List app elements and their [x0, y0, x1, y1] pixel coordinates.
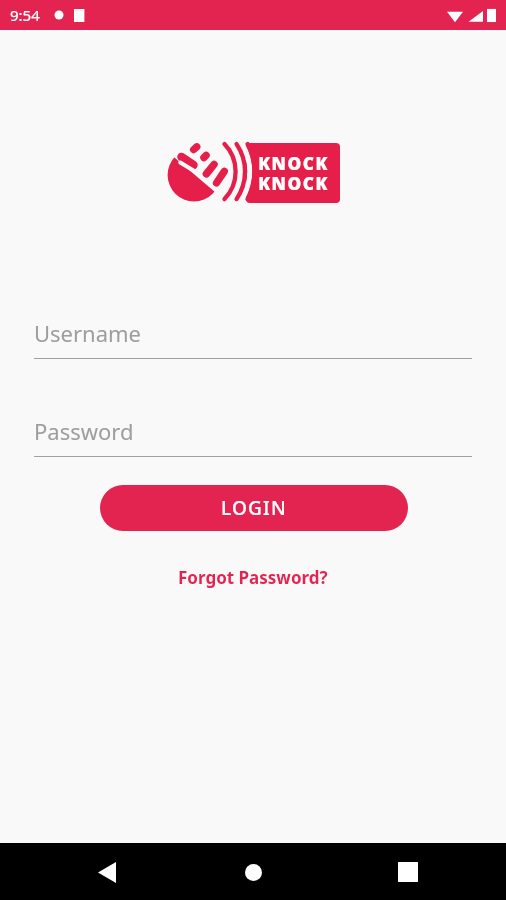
staticText: LOGIN	[221, 495, 287, 521]
button[interactable]: Home	[232, 851, 274, 893]
staticText: Forgot Password?	[178, 566, 328, 589]
staticText: Username	[34, 318, 142, 348]
staticText: KNOCK KNOCK	[258, 152, 329, 195]
button[interactable]: Forgot Password?	[163, 563, 343, 591]
staticText: 9:54	[10, 5, 40, 25]
button[interactable]: LOGIN	[100, 485, 408, 531]
button[interactable]: Back	[86, 851, 128, 893]
staticText: Password	[34, 416, 134, 446]
button[interactable]: Recent apps	[387, 851, 429, 893]
